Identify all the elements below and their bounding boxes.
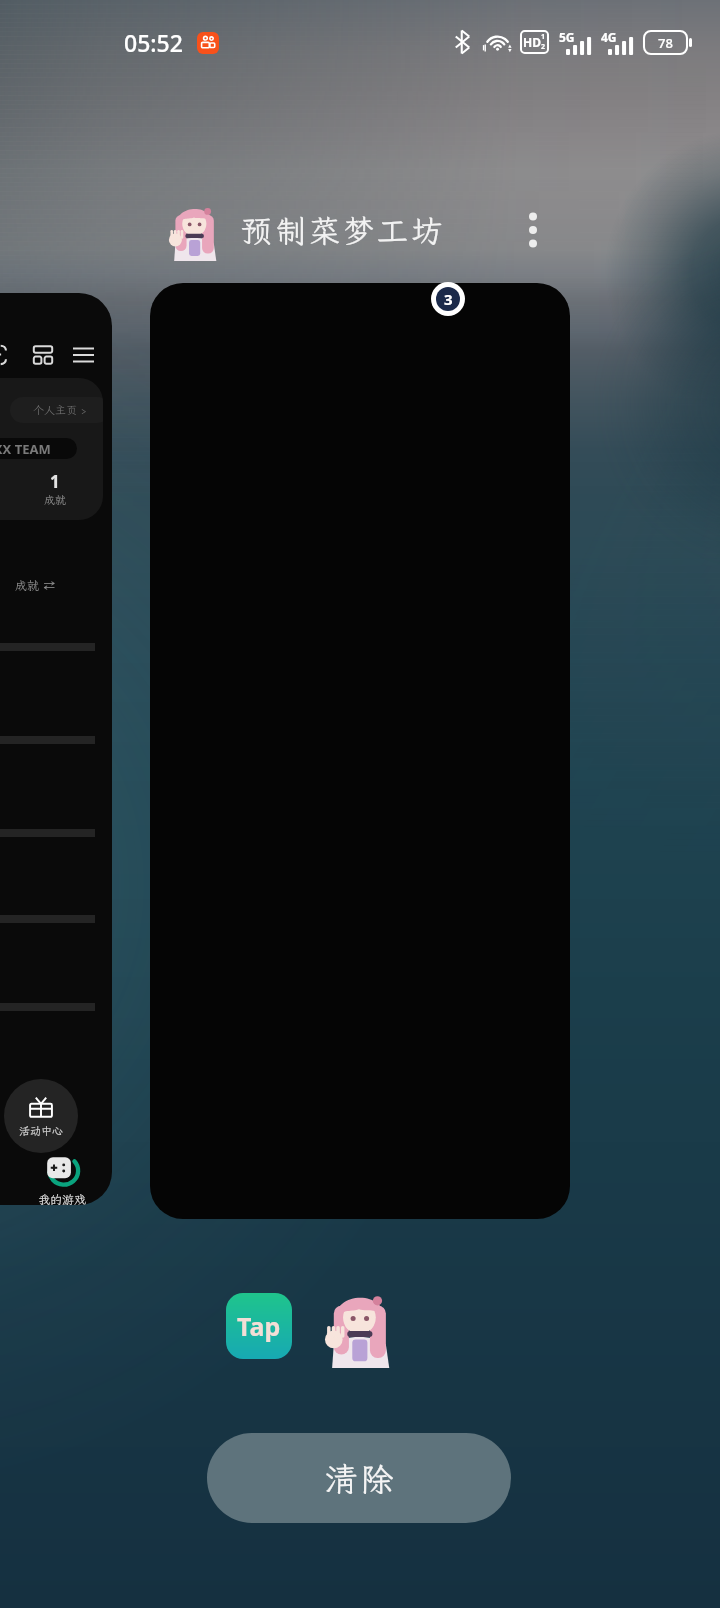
staticText: 成就 ⇄ [15,578,56,594]
button[interactable]: 活动中心 [4,1079,78,1153]
staticText: 成就 [44,493,66,507]
staticText: 2 [541,42,546,52]
staticText: 个人主页 › [33,403,87,417]
button[interactable] [150,283,570,1219]
staticText: Tap [237,1309,281,1343]
staticText: 05:52 [124,27,183,58]
staticText: 我的游戏 [38,1192,87,1205]
staticText: HD [523,34,541,50]
button[interactable]: More options [509,206,557,254]
staticText: 活动中心 [19,1124,63,1138]
staticText: 3 [444,289,453,309]
staticText: 清除 [323,1457,395,1500]
button[interactable]: 清除 [207,1433,511,1523]
button[interactable]: App [317,1281,401,1371]
button[interactable]: 个人主页 › [0,293,112,1205]
staticText: 4G [601,29,617,45]
staticText: XXXXXX TEAM [0,440,51,458]
staticText: 5G [559,29,575,45]
staticText: 1 [50,470,60,493]
staticText: 78 [658,34,673,52]
staticText: 1 [541,32,546,42]
button[interactable]: TapTap [226,1293,292,1359]
staticText: 预制菜梦工坊 [241,210,445,251]
